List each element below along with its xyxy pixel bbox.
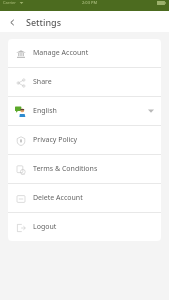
button[interactable]: Terms & Conditions: [8, 155, 161, 183]
button[interactable]: Manage Account: [8, 39, 161, 67]
button[interactable]: English: [8, 97, 161, 125]
button[interactable]: Back: [4, 14, 20, 30]
staticText: Delete Account: [33, 193, 83, 203]
staticText: Settings: [26, 16, 62, 28]
button[interactable]: Logout: [8, 213, 161, 241]
staticText: Carrier: [3, 0, 17, 5]
staticText: English: [33, 106, 57, 116]
staticText: Terms & Conditions: [33, 164, 98, 174]
button[interactable]: Share: [8, 68, 161, 96]
button[interactable]: Delete Account: [8, 184, 161, 212]
staticText: Share: [33, 77, 52, 87]
staticText: Privacy Policy: [33, 135, 78, 145]
staticText: Manage Account: [33, 48, 89, 58]
staticText: 2:03 PM: [82, 0, 98, 5]
button[interactable]: Privacy Policy: [8, 126, 161, 154]
staticText: Logout: [33, 222, 57, 232]
